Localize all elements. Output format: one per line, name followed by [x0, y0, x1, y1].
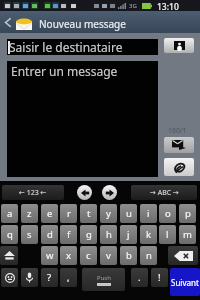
button[interactable]: a	[1, 204, 18, 223]
button[interactable]: y	[100, 204, 117, 223]
staticText: t	[87, 207, 91, 220]
staticText: 13:10	[157, 1, 179, 12]
button[interactable]: Entrer un message	[7, 61, 158, 177]
staticText: n	[146, 249, 152, 262]
staticText: z	[27, 207, 32, 220]
staticText: q	[7, 228, 13, 241]
button[interactable]: Shift	[0, 246, 18, 265]
staticText: 160/1	[168, 126, 187, 136]
button[interactable]: Previous	[77, 185, 92, 200]
button[interactable]: ← 123 ←	[2, 185, 64, 200]
button[interactable]: Next	[102, 185, 117, 200]
button[interactable]: t	[80, 204, 97, 223]
staticText: u	[126, 207, 132, 220]
staticText: g	[86, 228, 92, 241]
button[interactable]: l	[159, 225, 176, 244]
staticText: v	[106, 249, 111, 262]
button[interactable]: x	[60, 246, 77, 265]
staticText: k	[146, 228, 152, 241]
button[interactable]: c	[80, 246, 97, 265]
button[interactable]: Contacts	[164, 38, 194, 53]
button[interactable]: s	[21, 225, 38, 244]
staticText: p	[185, 207, 191, 220]
staticText: y	[106, 207, 111, 220]
staticText: ,	[67, 271, 70, 284]
staticText: ?	[47, 271, 52, 284]
button[interactable]: Back	[1, 11, 15, 33]
staticText: c	[86, 249, 91, 262]
button[interactable]: .	[131, 268, 148, 287]
button[interactable]: Voice input	[21, 268, 38, 287]
button[interactable]: Saisir le destinataire	[7, 39, 158, 55]
button[interactable]: !	[151, 268, 168, 287]
staticText: → ABC →	[150, 188, 179, 198]
button[interactable]: b	[120, 246, 137, 265]
button[interactable]: Send message	[164, 137, 194, 153]
button[interactable]: q	[1, 225, 18, 244]
button[interactable]: o	[159, 204, 176, 223]
button[interactable]: r	[60, 204, 77, 223]
button[interactable]: j	[120, 225, 137, 244]
staticText: .	[138, 271, 141, 284]
staticText: m	[183, 228, 192, 241]
staticText: 3G	[129, 2, 137, 10]
staticText: o	[165, 207, 171, 220]
staticText: b	[126, 249, 132, 262]
button[interactable]: Attach file	[164, 158, 194, 176]
staticText: j	[127, 228, 130, 241]
staticText: !	[158, 271, 161, 284]
button[interactable]: n	[140, 246, 157, 265]
button[interactable]: Suivant	[170, 268, 200, 296]
staticText: f	[67, 228, 71, 241]
button[interactable]: k	[140, 225, 157, 244]
button[interactable]: → ABC →	[131, 185, 197, 200]
button[interactable]: e	[41, 204, 58, 223]
staticText: e	[47, 207, 53, 220]
button[interactable]: g	[80, 225, 97, 244]
staticText: Saisir le destinataire	[9, 39, 123, 55]
button[interactable]: Backspace	[168, 246, 198, 265]
staticText: w	[46, 249, 54, 262]
staticText: x	[66, 249, 72, 262]
button[interactable]: Emoji	[1, 268, 18, 287]
button[interactable]: m	[179, 225, 196, 244]
staticText: i	[147, 207, 150, 220]
button[interactable]: ?	[41, 268, 58, 287]
button[interactable]: ,	[60, 268, 77, 287]
staticText: l	[166, 228, 169, 241]
button[interactable]: w	[41, 246, 58, 265]
staticText: d	[47, 228, 53, 241]
button[interactable]: f	[60, 225, 77, 244]
staticText: h	[106, 228, 112, 241]
button[interactable]: d	[41, 225, 58, 244]
button[interactable]: z	[21, 204, 38, 223]
button[interactable]: Space	[82, 268, 125, 291]
button[interactable]: h	[100, 225, 117, 244]
staticText: ← 123 ←	[19, 188, 47, 198]
button[interactable]: v	[100, 246, 117, 265]
staticText: s	[27, 228, 32, 241]
staticText: r	[67, 207, 71, 220]
button[interactable]: i	[140, 204, 157, 223]
button[interactable]: u	[120, 204, 137, 223]
staticText: Suivant	[171, 277, 199, 288]
staticText: a	[7, 207, 13, 220]
staticText: Entrer un message	[11, 63, 118, 79]
button[interactable]: p	[179, 204, 196, 223]
staticText: Push	[97, 274, 111, 282]
staticText: Nouveau message	[39, 17, 126, 31]
